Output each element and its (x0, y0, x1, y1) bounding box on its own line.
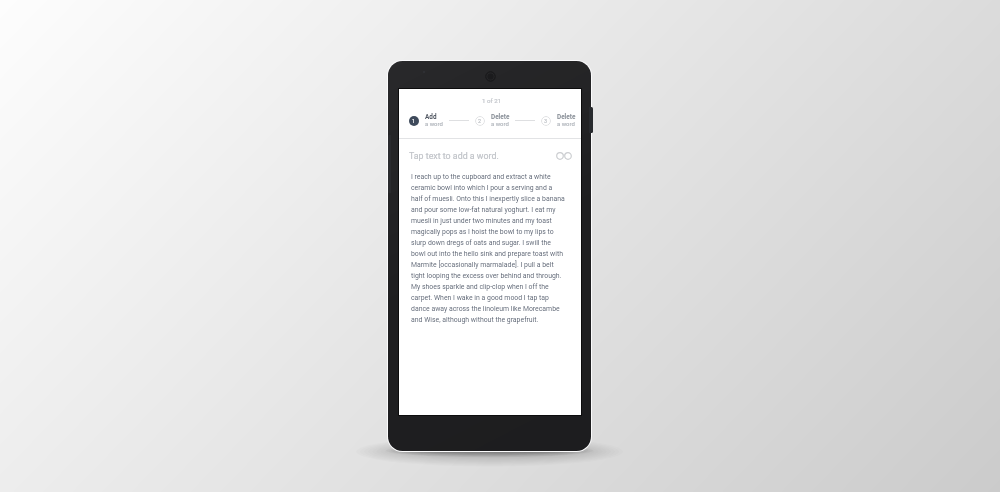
staticText: Add (425, 113, 437, 121)
staticText: 1 (412, 118, 416, 124)
button[interactable]: 3 (541, 106, 583, 135)
staticText: I reach up to the cupboard and extract a… (411, 173, 565, 324)
staticText: 2 (478, 118, 482, 124)
button[interactable]: 2 (475, 106, 517, 135)
staticText: a word (425, 121, 443, 128)
staticText: 3 (544, 118, 548, 124)
staticText: 1 of 21 (482, 97, 502, 104)
button[interactable]: Reading mode (552, 147, 576, 165)
staticText: Delete (557, 113, 576, 121)
staticText: a word (491, 121, 509, 128)
button[interactable]: 1 (409, 106, 451, 135)
staticText: Tap text to add a word. (409, 151, 499, 161)
staticText: Delete (491, 113, 510, 121)
staticText: a word (557, 121, 575, 128)
